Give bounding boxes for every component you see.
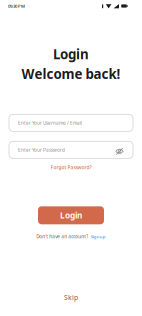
- staticText: 09:30 PM: [8, 3, 25, 9]
- button[interactable]: Login: [38, 206, 104, 224]
- staticText: Don't have an account?: [36, 233, 88, 240]
- staticText: Enter Your Password: [18, 147, 65, 153]
- staticText: Skip: [64, 293, 78, 302]
- staticText: Enter Your Username / Email: [18, 120, 82, 126]
- staticText: Welcome back!: [21, 65, 120, 83]
- staticText: Login: [60, 210, 82, 221]
- staticText: Login: [53, 45, 89, 63]
- button[interactable]: Enter Your Password: [9, 141, 133, 158]
- button[interactable]: Forgot Password?: [9, 163, 133, 171]
- button[interactable]: Skip: [64, 293, 78, 302]
- button[interactable]: Enter Your Username / Email: [9, 114, 133, 131]
- button[interactable]: Signup: [91, 234, 106, 239]
- staticText: Forgot Password?: [50, 164, 91, 170]
- staticText: Signup: [91, 234, 106, 239]
